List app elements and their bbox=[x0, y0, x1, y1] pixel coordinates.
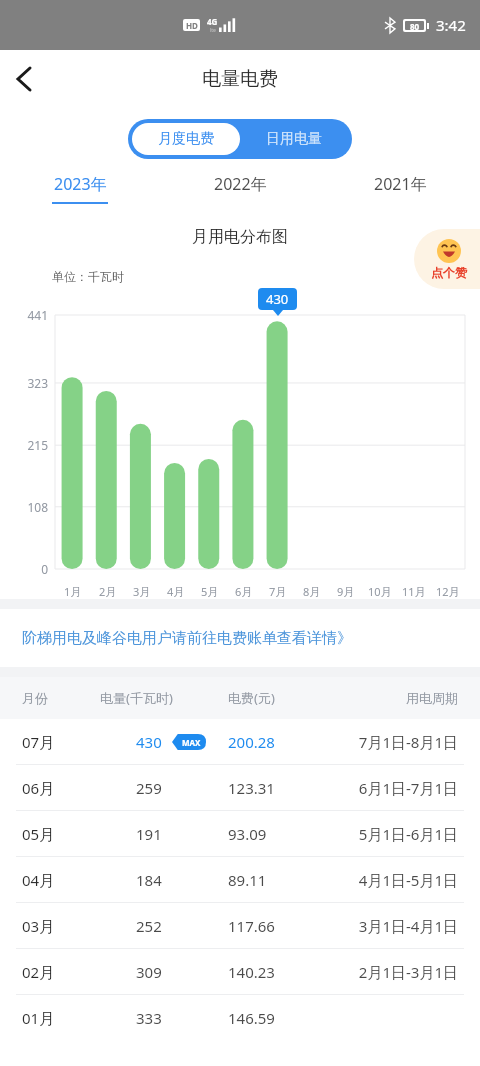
staticText: 5月1日-6月1日 bbox=[341, 824, 458, 844]
button[interactable]: 01月 bbox=[0, 995, 480, 1040]
button[interactable]: 2023年 bbox=[0, 173, 160, 211]
staticText: 1月 bbox=[64, 584, 82, 599]
staticText: 电量电费 bbox=[202, 67, 278, 91]
staticText: 电费(元) bbox=[228, 689, 341, 707]
staticText: 月用电分布图 bbox=[0, 227, 480, 247]
staticText: 10月 bbox=[368, 584, 392, 599]
staticText: 6月1日-7月1日 bbox=[341, 778, 458, 798]
staticText: 9月 bbox=[337, 584, 355, 599]
button[interactable]: 06月 bbox=[0, 765, 480, 810]
staticText: 323 bbox=[0, 375, 48, 391]
button[interactable]: 2022年 bbox=[160, 173, 320, 211]
staticText: 200.28 bbox=[228, 732, 341, 752]
button[interactable]: 点个赞 bbox=[414, 229, 480, 289]
staticText: 12月 bbox=[436, 584, 460, 599]
staticText: 430 bbox=[266, 290, 289, 308]
staticText: 146.59 bbox=[228, 1008, 341, 1028]
staticText: HD bbox=[186, 20, 198, 31]
staticText: 184 bbox=[136, 870, 162, 890]
staticText: 5月 bbox=[201, 584, 219, 599]
button[interactable]: 03月 bbox=[0, 903, 480, 948]
staticText: 月份 bbox=[22, 690, 100, 706]
staticText: 07月 bbox=[22, 732, 100, 752]
staticText: 3:42 bbox=[436, 15, 466, 35]
staticText: 333 bbox=[136, 1008, 162, 1028]
staticText: 6月 bbox=[235, 584, 253, 599]
staticText: 215 bbox=[0, 437, 48, 453]
staticText: 191 bbox=[136, 824, 162, 844]
button[interactable]: 05月 bbox=[0, 811, 480, 856]
button[interactable]: Back bbox=[0, 55, 48, 103]
staticText: 01月 bbox=[22, 1008, 100, 1028]
button[interactable]: 阶梯用电及峰谷电用户请前往电费账单查看详情 bbox=[0, 609, 480, 667]
staticText: 2月 bbox=[99, 584, 117, 599]
staticText: 80 bbox=[410, 21, 420, 30]
staticText: 259 bbox=[136, 778, 162, 798]
button[interactable]: 04月 bbox=[0, 857, 480, 902]
staticText: 252 bbox=[136, 916, 162, 936]
staticText: 4G bbox=[207, 16, 218, 27]
button[interactable]: 2021年 bbox=[320, 173, 480, 211]
staticText: 02月 bbox=[22, 962, 100, 982]
staticText: 140.23 bbox=[228, 962, 341, 982]
staticText: 2021年 bbox=[374, 173, 427, 195]
staticText: MAX bbox=[182, 737, 201, 748]
staticText: 3月 bbox=[133, 584, 151, 599]
staticText: 3月1日-4月1日 bbox=[341, 916, 458, 936]
staticText: 月度电费 bbox=[158, 130, 214, 148]
staticText: 2023年 bbox=[54, 173, 107, 195]
staticText: 8月 bbox=[303, 584, 321, 599]
staticText: 日用电量 bbox=[266, 130, 322, 148]
staticText: 阶梯用电及峰谷电用户请前往电费账单查看详情 bbox=[22, 629, 337, 648]
staticText: 441 bbox=[0, 307, 48, 323]
button[interactable]: 日用电量 bbox=[240, 123, 348, 155]
staticText: 06月 bbox=[22, 778, 100, 798]
staticText: 117.66 bbox=[228, 916, 341, 936]
button[interactable]: 07月 bbox=[0, 719, 480, 764]
staticText: 2022年 bbox=[214, 173, 267, 195]
staticText: 03月 bbox=[22, 916, 100, 936]
staticText: 89.11 bbox=[228, 870, 341, 890]
staticText: lte bbox=[210, 27, 216, 34]
staticText: 点个赞 bbox=[431, 265, 467, 280]
staticText: 单位：千瓦时 bbox=[52, 269, 124, 284]
staticText: 》 bbox=[337, 629, 352, 648]
staticText: 4月 bbox=[167, 584, 185, 599]
staticText: 04月 bbox=[22, 870, 100, 890]
button[interactable]: 月度电费 bbox=[132, 123, 240, 155]
staticText: 11月 bbox=[402, 584, 426, 599]
staticText: 108 bbox=[0, 499, 48, 515]
staticText: 123.31 bbox=[228, 778, 341, 798]
staticText: 309 bbox=[136, 962, 162, 982]
staticText: 05月 bbox=[22, 824, 100, 844]
staticText: 7月 bbox=[269, 584, 287, 599]
staticText: 2月1日-3月1日 bbox=[341, 962, 458, 982]
button[interactable]: 02月 bbox=[0, 949, 480, 994]
staticText: 0 bbox=[0, 561, 48, 577]
staticText: 93.09 bbox=[228, 824, 341, 844]
staticText: 4月1日-5月1日 bbox=[341, 870, 458, 890]
staticText: 430 bbox=[136, 732, 162, 752]
staticText: 电量(千瓦时) bbox=[100, 689, 228, 707]
staticText: 用电周期 bbox=[341, 690, 458, 706]
staticText: 7月1日-8月1日 bbox=[341, 732, 458, 752]
